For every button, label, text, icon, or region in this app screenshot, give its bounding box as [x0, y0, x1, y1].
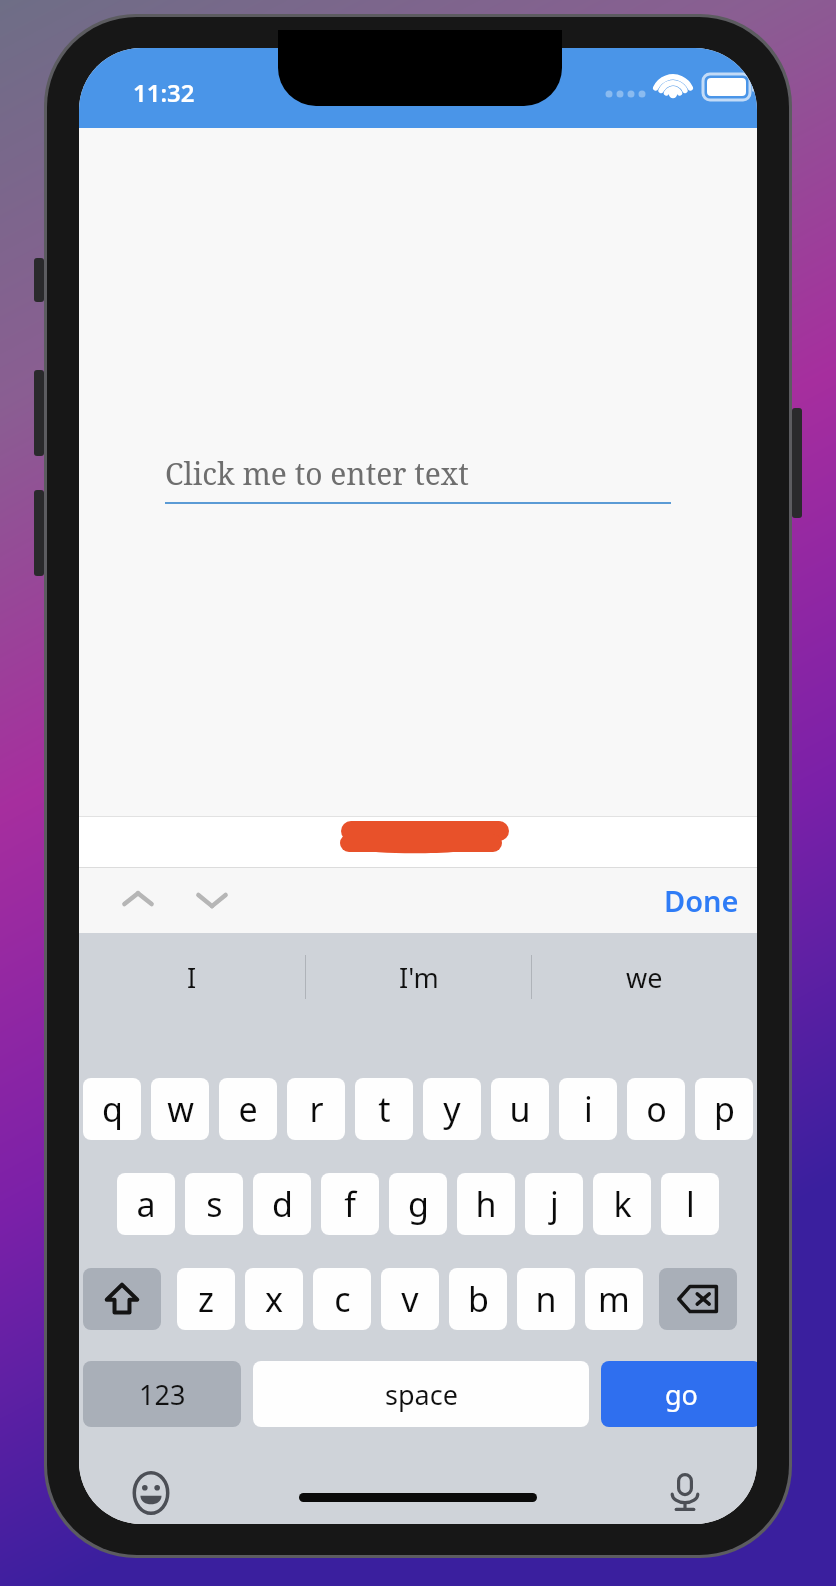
button[interactable]: I'm: [306, 933, 531, 1021]
button[interactable]: we: [532, 933, 757, 1021]
button[interactable]: n: [517, 1268, 575, 1330]
button[interactable]: i: [559, 1078, 617, 1140]
staticText: q: [102, 1086, 123, 1132]
button[interactable]: m: [585, 1268, 643, 1330]
button[interactable]: 123: [83, 1361, 241, 1427]
button[interactable]: p: [695, 1078, 753, 1140]
button[interactable]: e: [219, 1078, 277, 1140]
button[interactable]: Click me to enter text: [165, 453, 671, 504]
staticText: d: [272, 1181, 293, 1227]
staticText: v: [401, 1276, 419, 1322]
staticText: c: [334, 1276, 351, 1322]
staticText: y: [443, 1086, 461, 1132]
staticText: h: [475, 1181, 497, 1227]
button[interactable]: g: [389, 1173, 447, 1235]
button[interactable]: Emoji: [119, 1461, 183, 1524]
staticText: we: [626, 959, 663, 996]
staticText: n: [535, 1276, 557, 1322]
staticText: a: [136, 1181, 156, 1227]
staticText: I: [187, 959, 197, 996]
button[interactable]: go: [601, 1361, 757, 1427]
staticText: o: [646, 1086, 667, 1132]
staticText: x: [265, 1276, 283, 1322]
staticText: i: [584, 1086, 593, 1132]
button[interactable]: j: [525, 1173, 583, 1235]
button[interactable]: space: [253, 1361, 589, 1427]
button[interactable]: Next field: [175, 867, 249, 933]
button[interactable]: o: [627, 1078, 685, 1140]
button[interactable]: I: [79, 933, 305, 1021]
button[interactable]: Backspace: [659, 1268, 737, 1330]
staticText: s: [206, 1181, 223, 1227]
staticText: 11:32: [133, 76, 195, 109]
button[interactable]: x: [245, 1268, 303, 1330]
button[interactable]: l: [661, 1173, 719, 1235]
button[interactable]: w: [151, 1078, 209, 1140]
button[interactable]: d: [253, 1173, 311, 1235]
button[interactable]: Shift: [83, 1268, 161, 1330]
button[interactable]: u: [491, 1078, 549, 1140]
staticText: 123: [139, 1376, 186, 1413]
staticText: g: [408, 1181, 429, 1227]
staticText: t: [378, 1086, 391, 1132]
button[interactable]: b: [449, 1268, 507, 1330]
button[interactable]: y: [423, 1078, 481, 1140]
button[interactable]: k: [593, 1173, 651, 1235]
staticText: Click me to enter text: [165, 453, 469, 494]
button[interactable]: a: [117, 1173, 175, 1235]
staticText: I'm: [399, 959, 439, 996]
staticText: w: [167, 1086, 194, 1132]
button[interactable]: z: [177, 1268, 235, 1330]
staticText: r: [309, 1086, 324, 1132]
staticText: f: [344, 1181, 356, 1227]
button[interactable]: s: [185, 1173, 243, 1235]
staticText: Done: [664, 881, 739, 920]
button[interactable]: h: [457, 1173, 515, 1235]
button[interactable]: v: [381, 1268, 439, 1330]
staticText: b: [468, 1276, 489, 1322]
staticText: m: [598, 1276, 630, 1322]
staticText: space: [385, 1376, 458, 1413]
button[interactable]: q: [83, 1078, 141, 1140]
button[interactable]: c: [313, 1268, 371, 1330]
staticText: p: [714, 1086, 735, 1132]
staticText: go: [665, 1376, 698, 1413]
button[interactable]: Done: [664, 867, 739, 933]
staticText: e: [238, 1086, 258, 1132]
staticText: j: [550, 1181, 559, 1227]
button[interactable]: t: [355, 1078, 413, 1140]
button[interactable]: Voice input: [653, 1461, 717, 1524]
button[interactable]: f: [321, 1173, 379, 1235]
button[interactable]: r: [287, 1078, 345, 1140]
staticText: k: [613, 1181, 632, 1227]
staticText: z: [198, 1276, 214, 1322]
staticText: l: [686, 1181, 695, 1227]
button[interactable]: Previous field: [101, 867, 175, 933]
staticText: u: [509, 1086, 531, 1132]
